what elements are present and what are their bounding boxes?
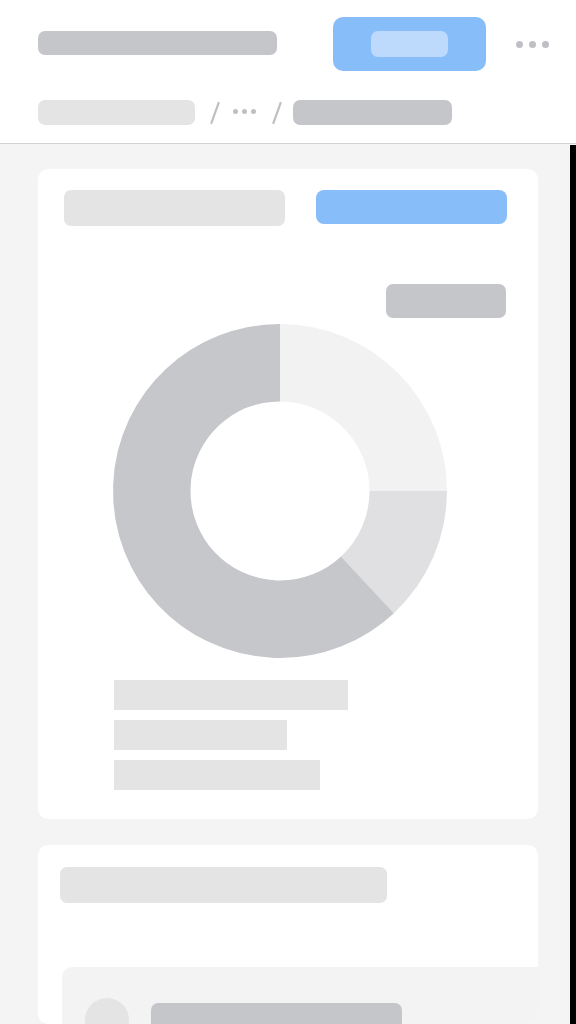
button[interactable]: [316, 190, 507, 224]
button[interactable]: [293, 100, 452, 125]
button[interactable]: More options: [506, 17, 558, 71]
button[interactable]: [38, 169, 538, 819]
button[interactable]: [38, 845, 538, 1024]
button[interactable]: [333, 17, 486, 71]
